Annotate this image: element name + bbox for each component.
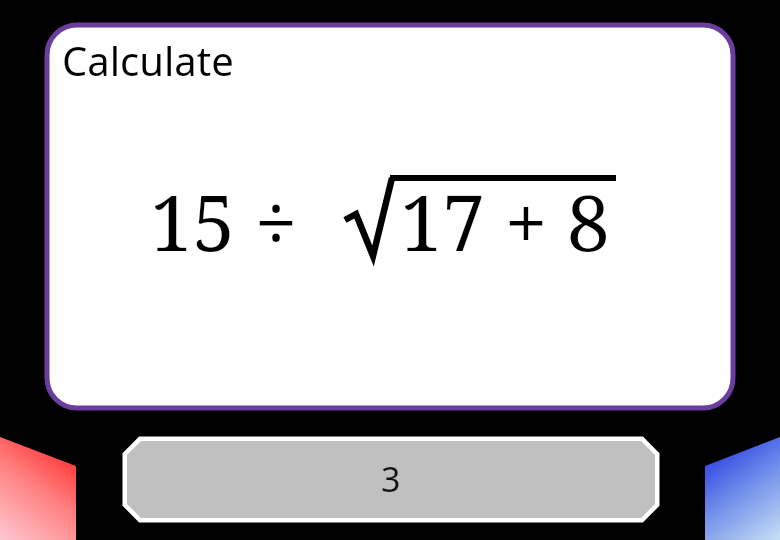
button[interactable] — [0, 0, 780, 540]
button[interactable]: Previous — [0, 0, 780, 540]
